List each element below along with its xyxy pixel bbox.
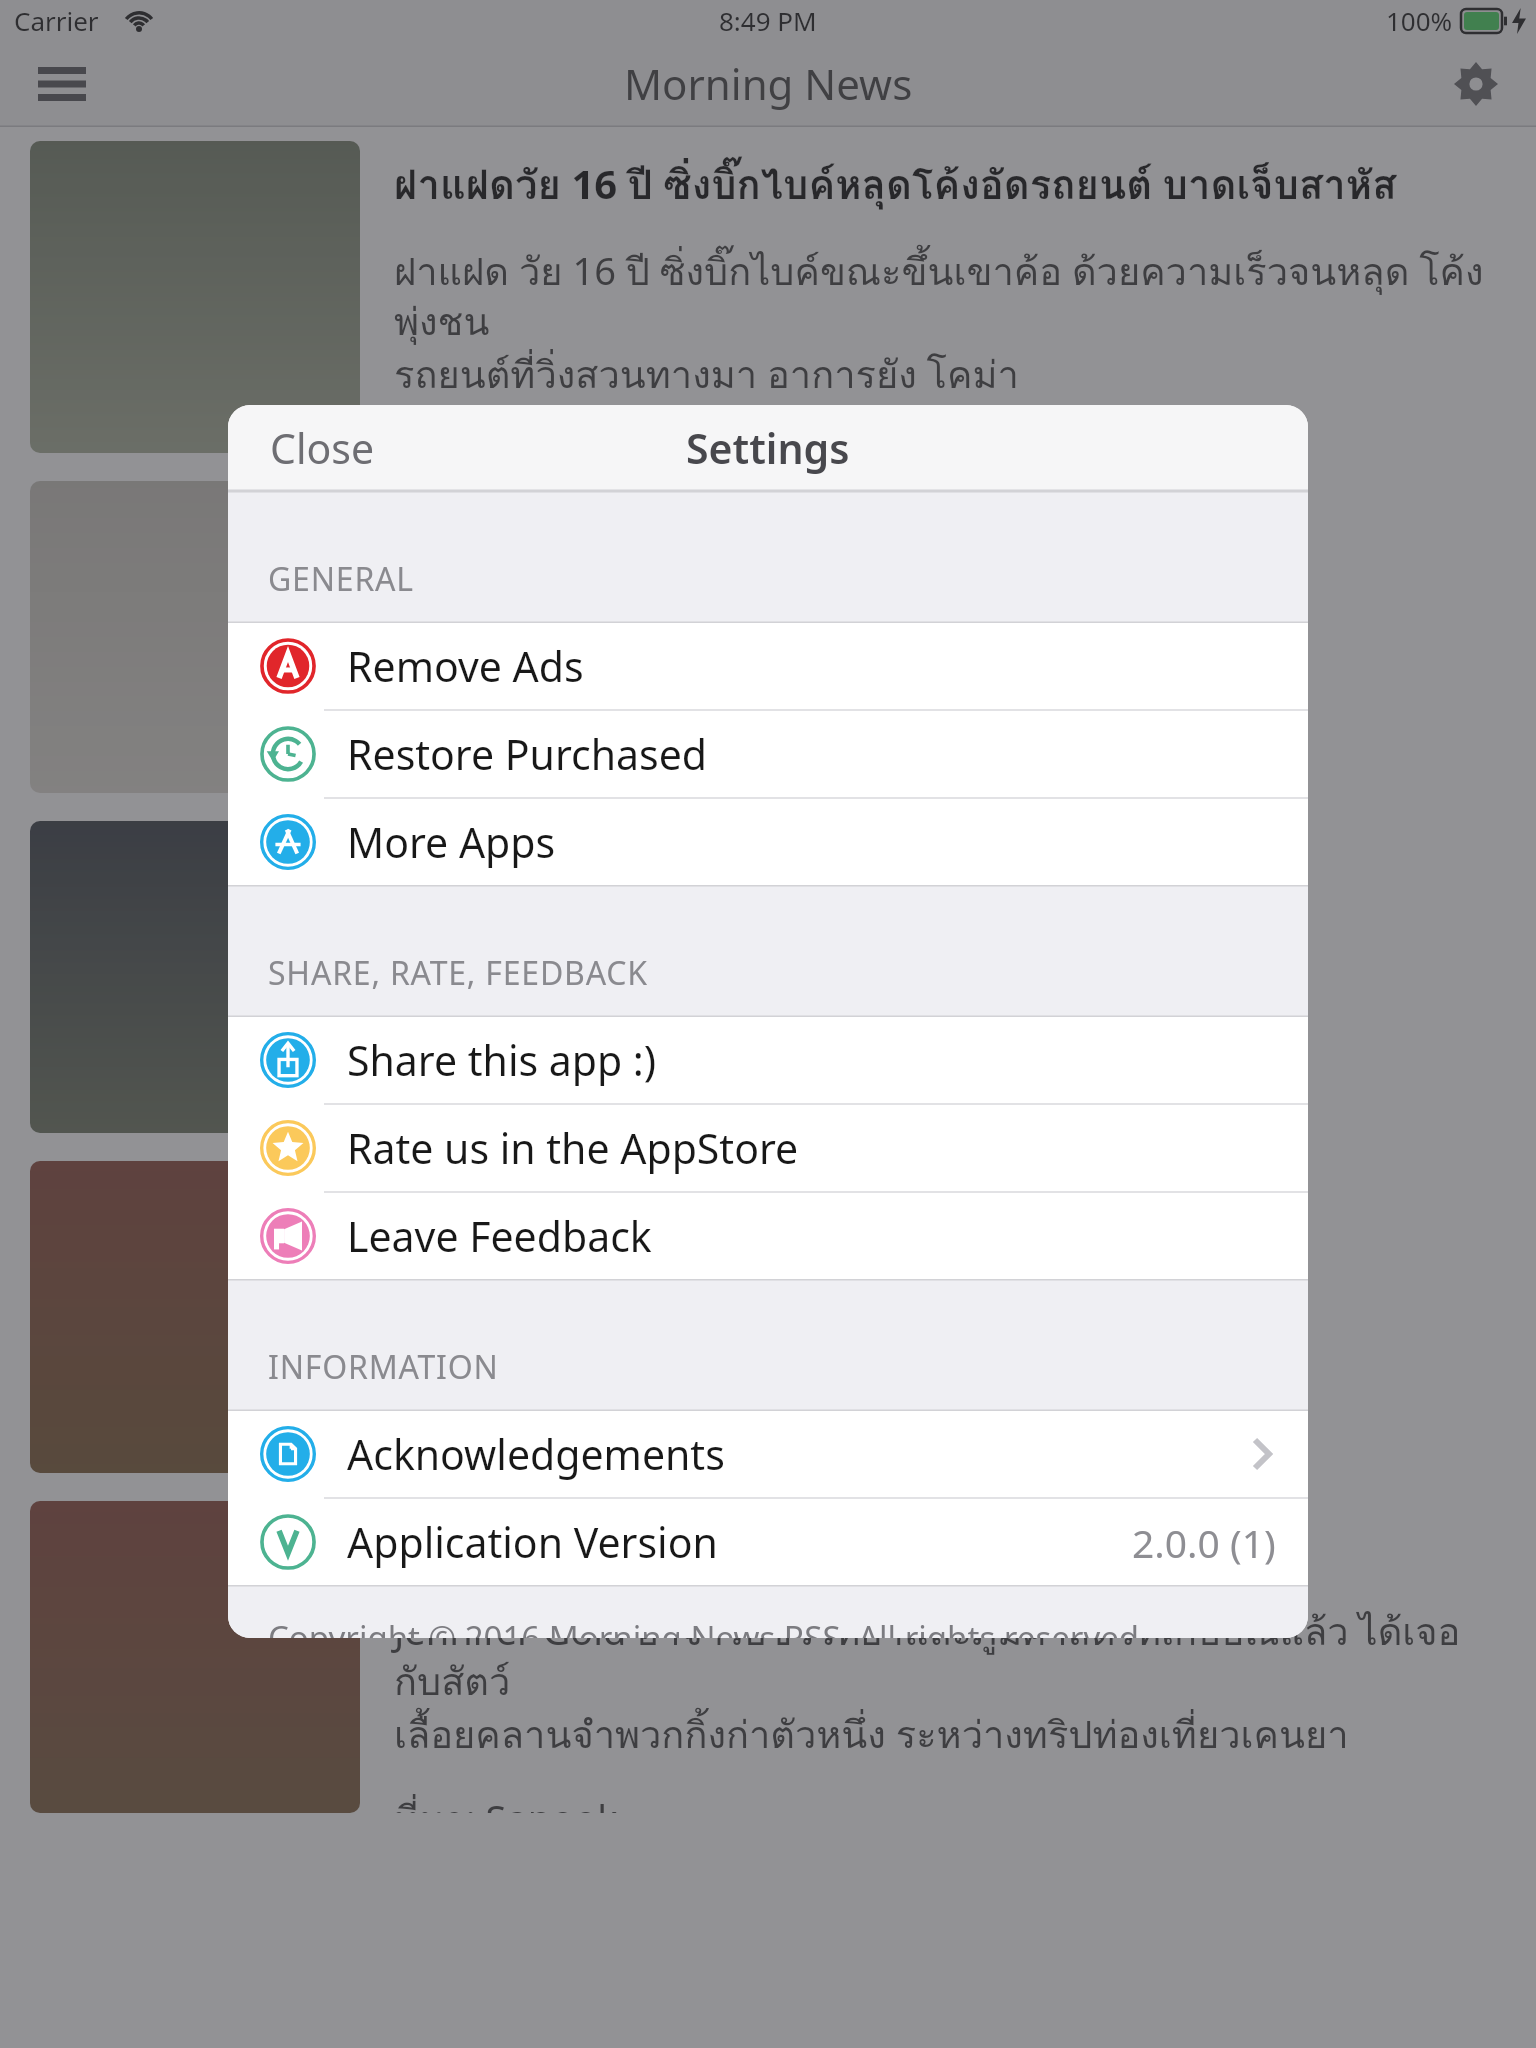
staticText: Rate us in the AppStore [347,1120,799,1176]
staticText: 100% [1386,3,1453,38]
staticText: Restore Purchased [347,726,708,782]
staticText: Morning News [624,55,913,112]
button[interactable]: Application Version [228,1499,1308,1585]
staticText: INFORMATION [268,1345,499,1389]
staticText: เป๊ะเวอร์! เจอสัตว์จำพวกกิ้งก่า คล้าย "ส… [394,1513,1295,1577]
staticText: Close [270,420,375,476]
button[interactable]: Share this app :) [228,1017,1308,1103]
button[interactable] [30,1161,1506,1473]
button[interactable]: Leave Feedback [228,1193,1308,1279]
staticText: Remove Ads [347,638,584,694]
staticText: Application Version [347,1514,718,1570]
staticText: Leave Feedback [347,1208,652,1264]
staticText: ฝาแฝดวัย 16 ปี ซิ่งบิ๊กไบค์หลุดโค้งอัดรถ… [394,153,1397,217]
button[interactable]: เป๊ะเวอร์! เจอสัตว์จำพวกกิ้งก่า คล้าย "ส… [30,1501,1506,1813]
staticText: Share this app :) [347,1032,657,1088]
button[interactable]: Menu [24,53,100,115]
button[interactable] [30,481,1506,793]
button[interactable]: Restore Purchased [228,711,1308,797]
staticText: 8:49 PM [719,3,817,38]
button[interactable]: Remove Ads [228,623,1308,709]
button[interactable]: More Apps [228,799,1308,885]
staticText: Settings [686,420,850,476]
staticText: SHARE, RATE, FEEDBACK [268,951,648,995]
staticText: Acknowledgements [347,1426,725,1482]
button[interactable]: ฝาแฝดวัย 16 ปี ซิ่งบิ๊กไบค์หลุดโค้งอัดรถ… [30,141,1506,453]
staticText: ที่มา: Sanook [394,1789,618,1813]
staticText: More Apps [347,814,556,870]
staticText: ฝาแฝด วัย 16 ปี ซิ่งบิ๊กไบค์ขณะขึ้นเขาค้… [394,241,1506,405]
staticText: GENERAL [268,557,414,601]
button[interactable]: Settings [1440,48,1512,120]
button[interactable] [30,821,1506,1133]
staticText: Jennifer Gold อาจารย์ชีววิทยาและภูมิศาสต… [394,1601,1506,1765]
button[interactable]: Acknowledgements [228,1411,1308,1497]
staticText: Copyright © 2016 Morning News RSS. All r… [268,1615,1148,1638]
staticText: Carrier [14,3,99,38]
button[interactable]: Close [228,406,405,490]
staticText: 2.0.0 (1) [1132,1516,1276,1569]
button[interactable]: Rate us in the AppStore [228,1105,1308,1191]
